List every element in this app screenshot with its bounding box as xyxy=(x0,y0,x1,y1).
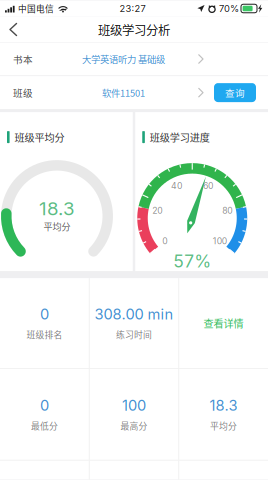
button[interactable]: 查询 xyxy=(214,83,256,102)
staticText: 100 xyxy=(213,236,227,246)
staticText: 20 xyxy=(152,205,162,216)
staticText: 平均分 xyxy=(43,220,70,233)
staticText: 57% xyxy=(173,251,211,272)
button[interactable]: 查看详情 xyxy=(179,278,268,368)
staticText: 18.3 xyxy=(39,197,75,220)
staticText: 最低分 xyxy=(31,419,58,432)
staticText: 班级平均分 xyxy=(15,130,65,144)
staticText: 书本 xyxy=(13,52,33,66)
staticText: 40 xyxy=(171,181,182,191)
staticText: 班级排名 xyxy=(26,328,62,341)
staticText: 中国电信 xyxy=(18,2,54,15)
staticText: 班级学习分析 xyxy=(98,20,170,38)
staticText: 软件11501 xyxy=(102,86,145,99)
staticText: 查询 xyxy=(225,86,245,99)
staticText: 班级学习进度 xyxy=(150,130,210,144)
staticText: 308.00 min xyxy=(94,305,173,323)
staticText: 70% xyxy=(219,3,239,14)
staticText: 查看详情 xyxy=(204,316,244,330)
staticText: 23:27 xyxy=(119,3,145,14)
staticText: 60 xyxy=(203,181,213,191)
staticText: 最高分 xyxy=(120,419,147,432)
staticText: 0 xyxy=(40,305,49,323)
staticText: 练习时间 xyxy=(116,328,152,341)
staticText: 班级 xyxy=(13,86,33,99)
staticText: 80 xyxy=(222,205,232,216)
staticText: 18.3 xyxy=(210,397,238,414)
staticText: 100 xyxy=(122,397,146,414)
staticText: 平均分 xyxy=(210,419,237,432)
button[interactable]: Back xyxy=(0,16,32,42)
staticText: 0 xyxy=(162,236,167,246)
staticText: 0 xyxy=(40,397,49,414)
staticText: 大学英语听力 基础级 xyxy=(82,52,165,66)
